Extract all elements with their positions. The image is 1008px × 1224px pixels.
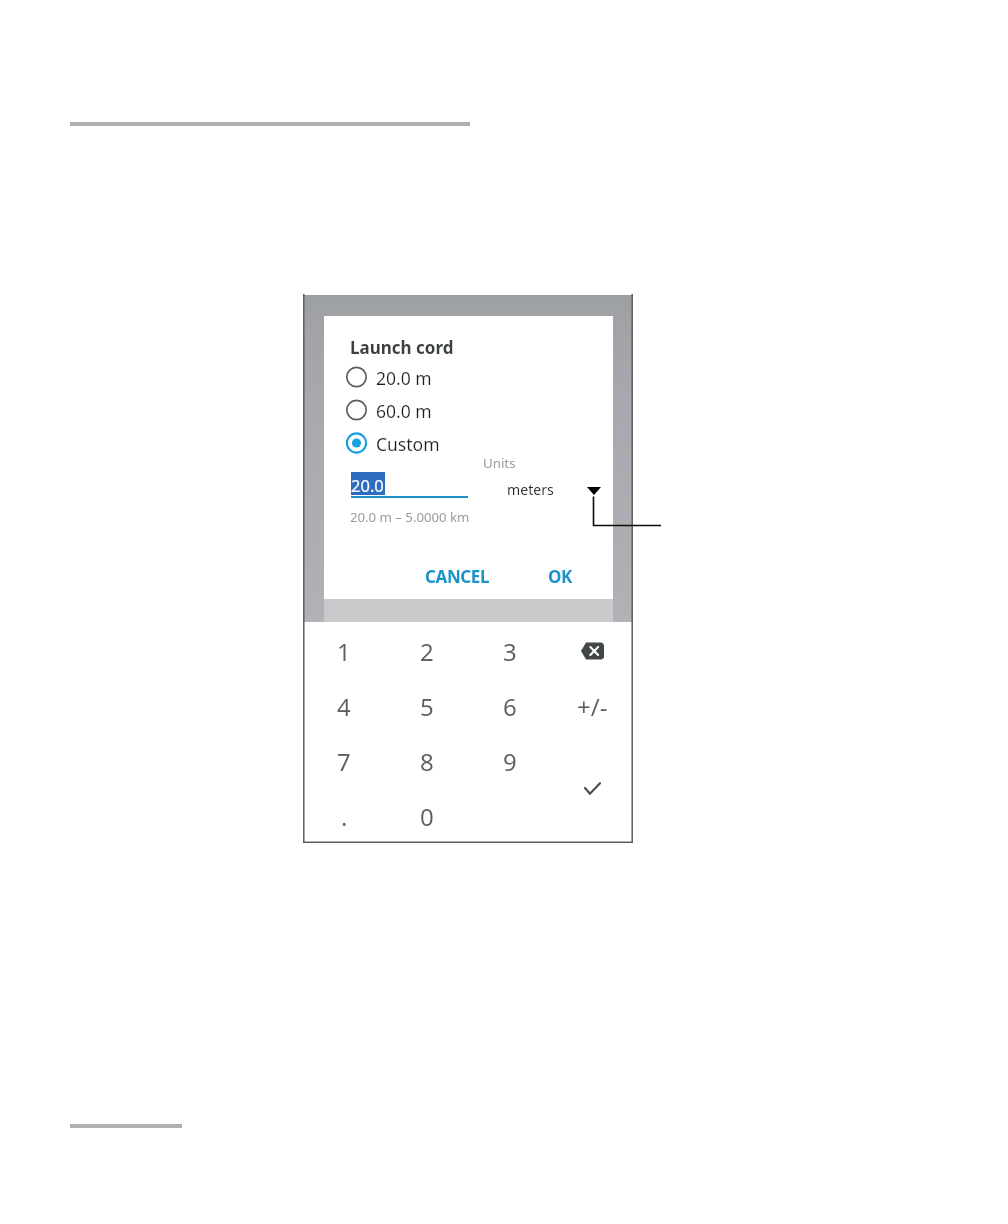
staticText: .	[341, 800, 348, 833]
button[interactable]: 0	[386, 789, 468, 843]
button[interactable]: Confirm	[551, 734, 633, 842]
staticText: 0	[420, 800, 434, 833]
staticText: OK	[548, 565, 572, 588]
staticText: 20.0 m – 5.0000 km	[350, 508, 470, 526]
button[interactable]: 20.0	[351, 472, 385, 495]
button[interactable]: 1	[303, 624, 385, 678]
staticText: 60.0 m	[376, 399, 432, 423]
button[interactable]: 20.0 m	[343, 361, 513, 393]
button[interactable]: +/-	[551, 679, 633, 733]
staticText: 7	[337, 745, 351, 778]
staticText: 1	[337, 635, 351, 668]
staticText: 3	[503, 635, 517, 668]
staticText: 20.0	[351, 474, 384, 496]
other: Confirm	[584, 782, 601, 795]
button[interactable]: 8	[386, 734, 468, 788]
button[interactable]: 5	[386, 679, 468, 733]
button[interactable]: .	[303, 789, 385, 843]
button[interactable]: Backspace	[551, 624, 633, 678]
button[interactable]: CANCEL	[423, 562, 491, 590]
staticText: 8	[420, 745, 434, 778]
staticText: 2	[420, 635, 434, 668]
staticText: 9	[503, 745, 517, 778]
staticText: Custom	[376, 432, 440, 456]
button[interactable]: Custom	[343, 427, 513, 459]
staticText: CANCEL	[425, 565, 490, 588]
staticText: 20.0 m	[376, 366, 432, 390]
staticText: 5	[420, 690, 434, 723]
button[interactable]: 7	[303, 734, 385, 788]
other: Backspace	[581, 642, 604, 660]
button[interactable]: 60.0 m	[343, 394, 513, 426]
button[interactable]: 2	[386, 624, 468, 678]
staticText: +/-	[577, 690, 608, 723]
button[interactable]: 6	[469, 679, 551, 733]
staticText: Units	[483, 454, 516, 472]
staticText: 6	[503, 690, 517, 723]
staticText: Launch cord	[350, 336, 454, 359]
staticText: 4	[337, 690, 351, 723]
button[interactable]: 9	[469, 734, 551, 788]
button[interactable]: 3	[469, 624, 551, 678]
button[interactable]: 4	[303, 679, 385, 733]
button[interactable]: Units: meters. Open dropdown	[483, 477, 605, 501]
staticText: meters	[507, 480, 554, 499]
button[interactable]: OK	[546, 562, 574, 590]
